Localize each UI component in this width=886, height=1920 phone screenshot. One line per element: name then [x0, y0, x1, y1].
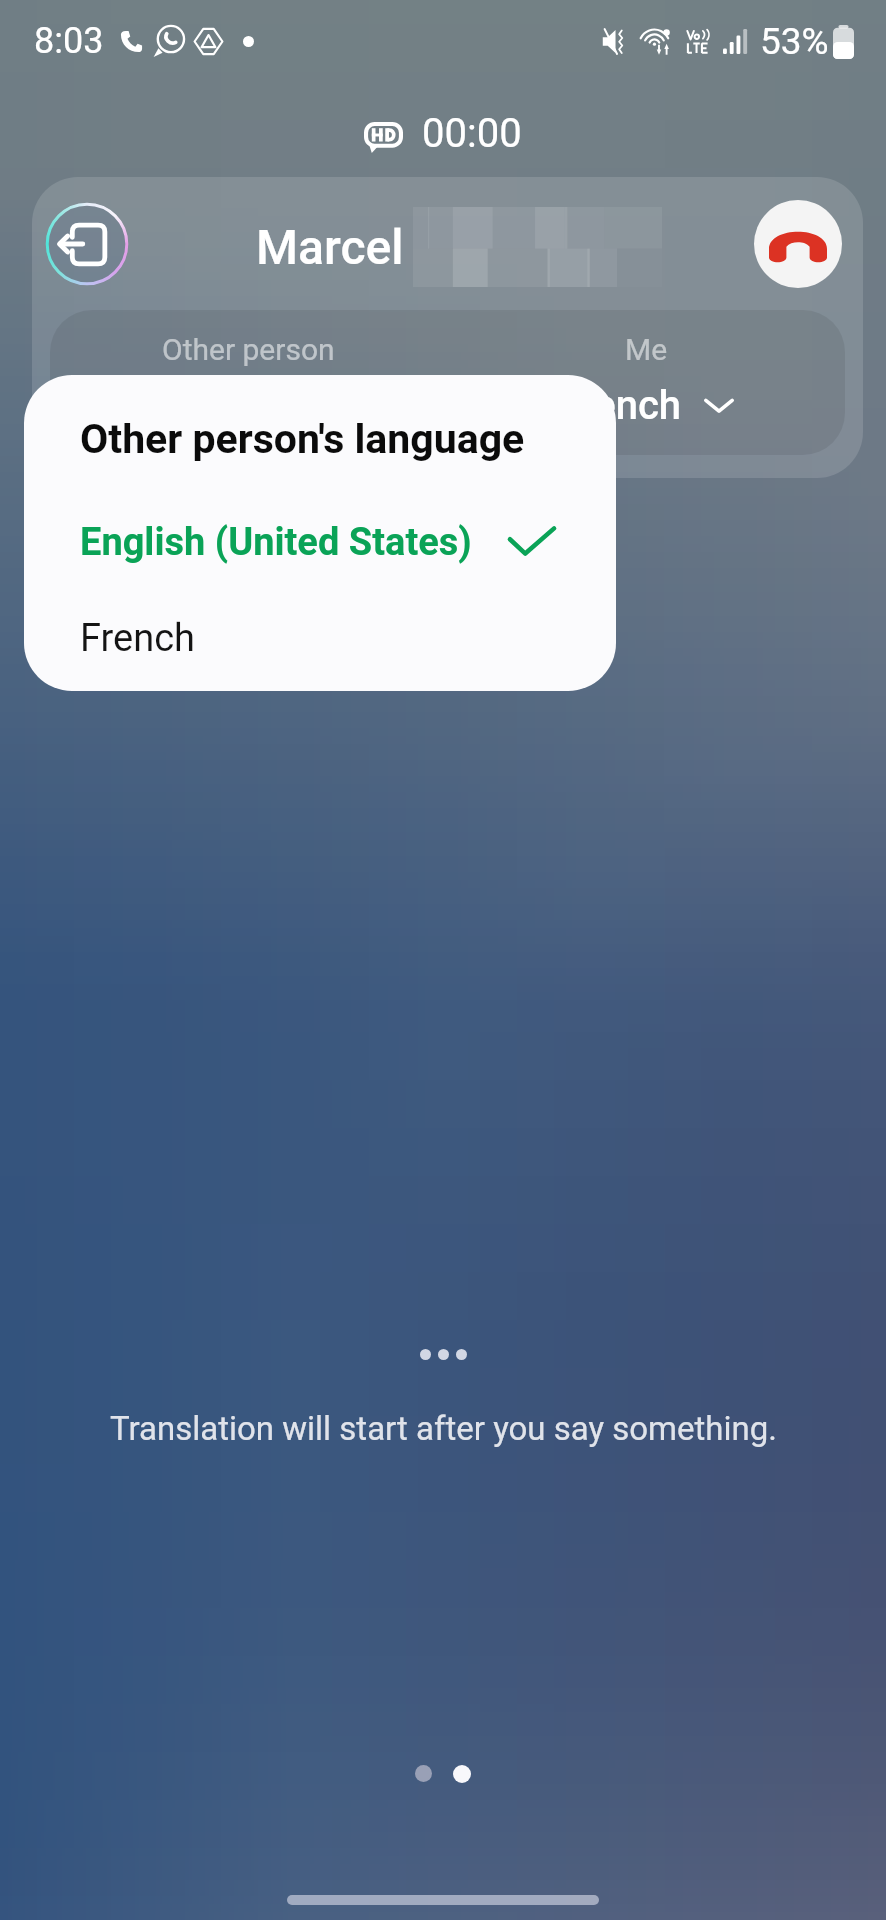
staticText: English (United States): [80, 520, 472, 565]
staticText: French: [559, 382, 682, 429]
staticText: 53%: [760, 20, 829, 63]
staticText: Other person's language: [80, 415, 525, 463]
staticText: 00:00: [422, 110, 522, 157]
button[interactable]: Me: [447, 310, 845, 455]
staticText: Marcel: [256, 219, 404, 275]
button[interactable]: Other person: [50, 310, 447, 455]
staticText: Me: [625, 332, 668, 367]
staticText: French: [80, 616, 196, 661]
button[interactable]: English (United States): [24, 500, 616, 584]
button[interactable]: End call: [754, 200, 842, 288]
button[interactable]: Minimize call: [45, 202, 129, 286]
staticText: Translation will start after you say som…: [110, 1409, 777, 1448]
staticText: 8:03: [34, 20, 104, 62]
staticText: Other person: [162, 332, 335, 367]
button[interactable]: French: [24, 598, 616, 678]
